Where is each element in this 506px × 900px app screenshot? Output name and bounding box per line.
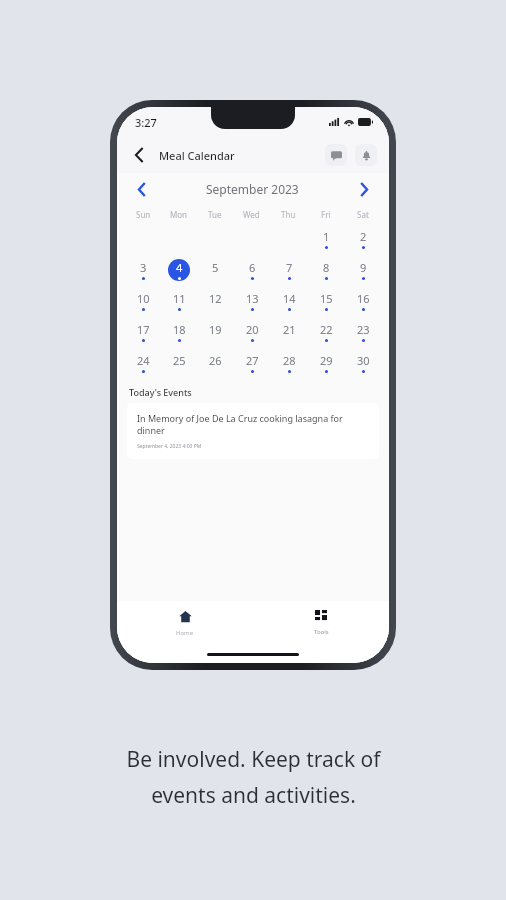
staticText: 20: [246, 322, 259, 337]
staticText: 8: [323, 260, 330, 275]
button[interactable]: 18: [166, 319, 192, 345]
staticText: 27: [246, 353, 259, 368]
button[interactable]: Messages: [325, 144, 347, 166]
staticText: Tools: [314, 628, 329, 636]
staticText: Sat: [357, 209, 369, 220]
button[interactable]: 22: [313, 319, 339, 345]
button[interactable]: 9: [350, 257, 376, 283]
button[interactable]: 11: [166, 288, 192, 314]
button[interactable]: 27: [239, 350, 265, 376]
staticText: Today's Events: [129, 386, 192, 398]
staticText: 3:27: [135, 115, 157, 130]
button[interactable]: In Memory of Joe De La Cruz cooking lasa…: [127, 403, 379, 459]
button[interactable]: Tools: [253, 601, 389, 645]
staticText: Thu: [281, 209, 296, 220]
button[interactable]: 8: [313, 257, 339, 283]
staticText: 11: [173, 291, 186, 306]
button[interactable]: 26: [202, 350, 228, 376]
staticText: 24: [137, 353, 150, 368]
staticText: 25: [173, 353, 186, 368]
staticText: Wed: [243, 209, 260, 220]
staticText: 7: [286, 260, 293, 275]
button[interactable]: 4: [166, 257, 192, 283]
button[interactable]: 6: [239, 257, 265, 283]
staticText: events and activities.: [151, 781, 356, 810]
staticText: 23: [357, 322, 370, 337]
button[interactable]: 23: [350, 319, 376, 345]
staticText: Home: [176, 629, 194, 637]
button[interactable]: 20: [239, 319, 265, 345]
button[interactable]: 15: [313, 288, 339, 314]
button[interactable]: 7: [276, 257, 302, 283]
staticText: Be involved. Keep track of: [126, 745, 381, 774]
staticText: 28: [283, 353, 296, 368]
staticText: In Memory of Joe De La Cruz cooking lasa…: [137, 412, 369, 437]
staticText: 18: [173, 322, 186, 337]
staticText: 12: [209, 291, 222, 306]
button[interactable]: 3: [130, 257, 156, 283]
button[interactable]: 12: [202, 288, 228, 314]
staticText: 5: [212, 260, 219, 275]
staticText: 13: [246, 291, 259, 306]
button[interactable]: 1: [313, 226, 339, 252]
staticText: 26: [209, 353, 222, 368]
button[interactable]: 30: [350, 350, 376, 376]
button[interactable]: 21: [276, 319, 302, 345]
button[interactable]: 29: [313, 350, 339, 376]
button[interactable]: 2: [350, 226, 376, 252]
staticText: 16: [357, 291, 370, 306]
button[interactable]: 28: [276, 350, 302, 376]
staticText: 1: [323, 229, 330, 244]
button[interactable]: 19: [202, 319, 228, 345]
staticText: 15: [320, 291, 333, 306]
staticText: 29: [320, 353, 333, 368]
button[interactable]: 17: [130, 319, 156, 345]
staticText: 17: [137, 322, 150, 337]
button[interactable]: 25: [166, 350, 192, 376]
staticText: Meal Calendar: [159, 148, 235, 163]
button[interactable]: Previous month: [131, 178, 153, 200]
button[interactable]: Back: [129, 145, 149, 165]
staticText: 30: [357, 353, 370, 368]
staticText: 9: [360, 260, 367, 275]
staticText: September 2023: [206, 181, 299, 197]
button[interactable]: 5: [202, 257, 228, 283]
staticText: September 4, 2023 4:00 PM: [137, 443, 202, 450]
staticText: Fri: [321, 209, 331, 220]
staticText: 6: [249, 260, 256, 275]
staticText: 22: [320, 322, 333, 337]
staticText: 4: [176, 260, 183, 275]
button[interactable]: 16: [350, 288, 376, 314]
button[interactable]: Home: [117, 601, 253, 645]
button[interactable]: 13: [239, 288, 265, 314]
staticText: 14: [283, 291, 296, 306]
button[interactable]: 10: [130, 288, 156, 314]
staticText: 10: [137, 291, 150, 306]
staticText: 2: [360, 229, 367, 244]
button[interactable]: 14: [276, 288, 302, 314]
button[interactable]: Next month: [353, 178, 375, 200]
staticText: Mon: [170, 209, 188, 220]
button[interactable]: Notifications: [355, 144, 377, 166]
staticText: Sun: [136, 209, 151, 220]
staticText: Tue: [208, 209, 222, 220]
button[interactable]: 24: [130, 350, 156, 376]
staticText: 21: [283, 322, 296, 337]
staticText: 3: [140, 260, 147, 275]
staticText: 19: [209, 322, 222, 337]
